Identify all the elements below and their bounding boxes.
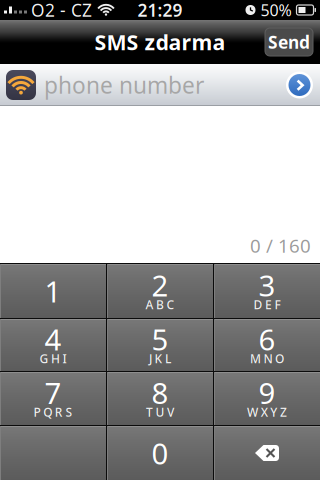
button[interactable]: 9: [214, 372, 320, 425]
staticText: 6: [258, 319, 275, 358]
button[interactable]: 1: [0, 264, 106, 318]
button[interactable]: Delete: [214, 426, 320, 480]
staticText: DEF: [253, 296, 281, 312]
staticText: 1: [44, 271, 61, 310]
staticText: Send: [268, 30, 310, 53]
button[interactable]: 0: [107, 426, 213, 480]
staticText: 0 / 160: [250, 233, 311, 258]
staticText: 2: [151, 265, 168, 304]
button[interactable]: 8: [107, 372, 213, 425]
staticText: 3: [258, 265, 275, 304]
staticText: JKL: [149, 350, 171, 366]
staticText: GHI: [39, 350, 67, 366]
staticText: SMS zdarma: [94, 28, 225, 56]
button[interactable]: 4: [0, 319, 106, 371]
staticText: WXYZ: [247, 404, 287, 420]
staticText: PQRS: [34, 404, 72, 420]
staticText: TUV: [146, 404, 174, 420]
staticText: 5: [151, 319, 168, 358]
staticText: 8: [151, 373, 168, 412]
staticText: 50%: [260, 0, 291, 21]
staticText: 7: [44, 373, 61, 412]
button[interactable]: Send: [265, 28, 313, 56]
staticText: phone number: [44, 70, 204, 100]
button[interactable]: 2: [107, 264, 213, 318]
button[interactable]: 6: [214, 319, 320, 371]
button[interactable]: 3: [214, 264, 320, 318]
button[interactable]: 5: [107, 319, 213, 371]
staticText: ABC: [145, 296, 175, 312]
staticText: 21:29: [137, 0, 182, 21]
button[interactable]: Blank: [0, 426, 106, 480]
staticText: 0: [151, 433, 168, 472]
button[interactable]: Choose recipient: [286, 71, 320, 98]
staticText: O2 - CZ: [31, 0, 92, 21]
staticText: 9: [258, 373, 275, 412]
staticText: 4: [44, 319, 61, 358]
button[interactable]: 7: [0, 372, 106, 425]
staticText: MNO: [250, 350, 284, 366]
